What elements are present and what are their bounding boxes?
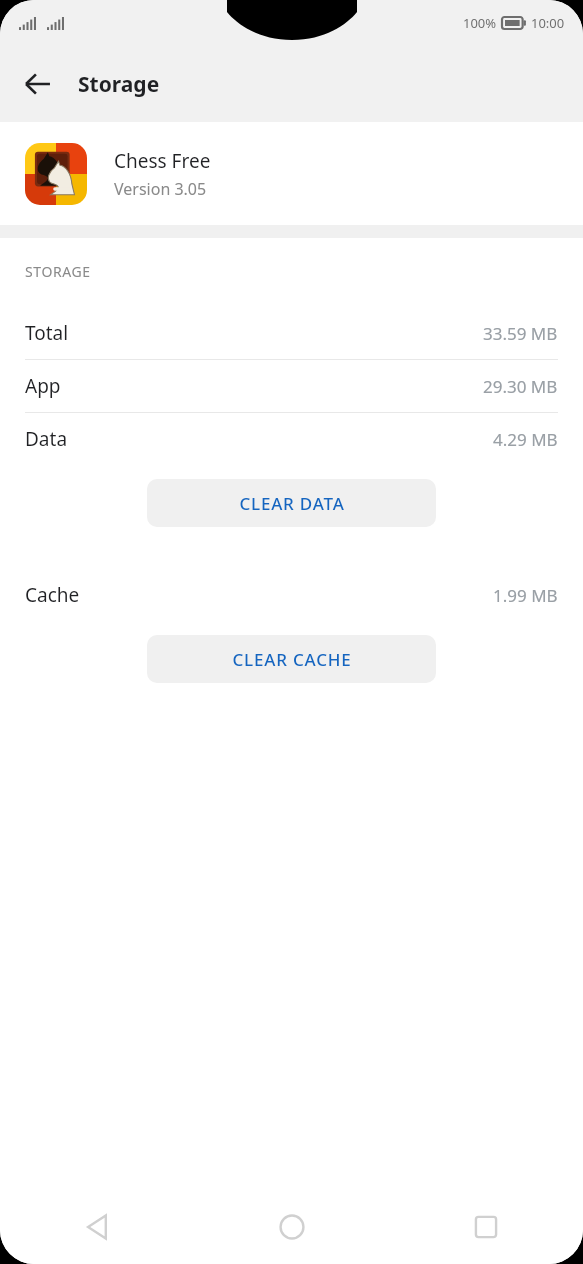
staticText: Chess Free: [114, 148, 211, 174]
button[interactable]: Home: [195, 1190, 389, 1264]
staticText: CLEAR CACHE: [232, 648, 352, 671]
button[interactable]: App: [0, 360, 583, 412]
staticText: STORAGE: [25, 262, 91, 281]
button[interactable]: Data: [0, 413, 583, 465]
staticText: 4.29 MB: [493, 428, 558, 451]
staticText: Version 3.05: [114, 178, 207, 200]
button[interactable]: Back: [0, 1190, 195, 1264]
button[interactable]: CLEAR DATA: [147, 479, 436, 527]
button[interactable]: Cache: [0, 569, 583, 621]
button[interactable]: CLEAR CACHE: [147, 635, 436, 683]
staticText: Total: [25, 320, 69, 346]
staticText: App: [25, 373, 61, 399]
staticText: 29.30 MB: [483, 375, 558, 398]
staticText: CLEAR DATA: [239, 492, 345, 515]
staticText: Data: [25, 426, 68, 452]
button[interactable]: Back: [10, 56, 66, 112]
staticText: 100%: [463, 14, 497, 32]
button[interactable]: Chess Free: [0, 122, 583, 225]
staticText: Cache: [25, 582, 80, 608]
staticText: 1.99 MB: [493, 584, 558, 607]
staticText: 33.59 MB: [483, 322, 558, 345]
staticText: 10:00: [531, 14, 565, 32]
button[interactable]: Total: [0, 307, 583, 359]
button[interactable]: Recents: [389, 1190, 583, 1264]
staticText: Storage: [78, 70, 160, 99]
